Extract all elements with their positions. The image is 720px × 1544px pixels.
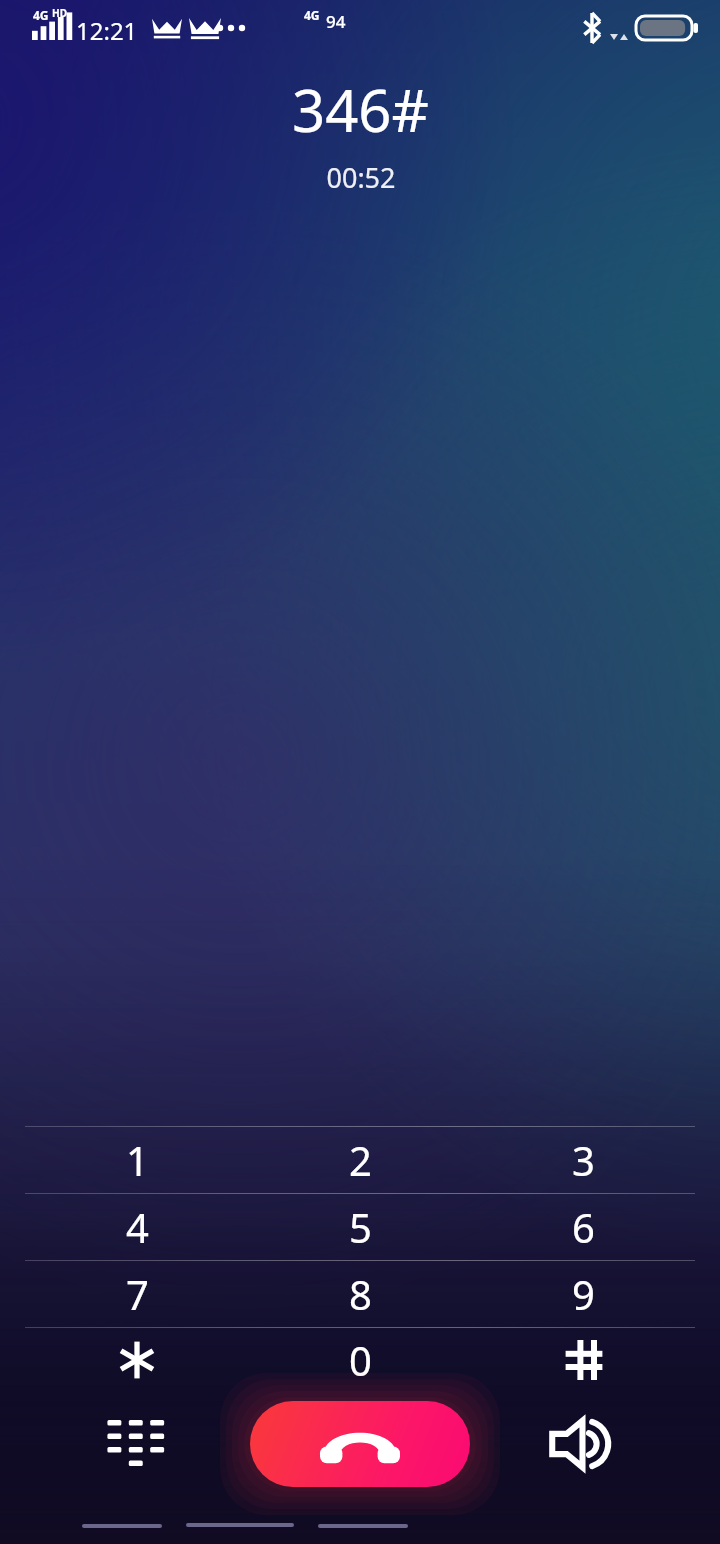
button[interactable]: 7 — [25, 1261, 249, 1327]
button[interactable]: 8 — [249, 1261, 472, 1327]
staticText: 7 — [126, 1267, 149, 1321]
staticText: 3 — [572, 1133, 595, 1187]
staticText: 8 — [349, 1267, 372, 1321]
button[interactable] — [25, 1328, 249, 1392]
button[interactable]: 3 — [472, 1127, 695, 1193]
button[interactable] — [472, 1328, 695, 1392]
staticText: 4G — [33, 7, 49, 23]
button[interactable]: 4 — [25, 1194, 249, 1260]
staticText: HD — [52, 6, 67, 20]
staticText: 6 — [572, 1200, 595, 1254]
button[interactable]: 5 — [249, 1194, 472, 1260]
button[interactable]: End call — [250, 1401, 470, 1487]
staticText: 2 — [349, 1133, 372, 1187]
button[interactable]: 6 — [472, 1194, 695, 1260]
staticText: 00:52 — [326, 159, 396, 196]
button[interactable]: 9 — [472, 1261, 695, 1327]
button[interactable]: 0 — [249, 1328, 472, 1392]
staticText: 4G — [304, 7, 320, 23]
staticText: 1 — [126, 1133, 149, 1187]
staticText: 5 — [349, 1200, 372, 1254]
staticText: 0 — [349, 1333, 372, 1387]
staticText: 12:21 — [76, 14, 138, 47]
button[interactable]: 2 — [249, 1127, 472, 1193]
staticText: 4 — [126, 1200, 149, 1254]
staticText: 346# — [292, 70, 429, 149]
button[interactable]: 1 — [25, 1127, 249, 1193]
button[interactable]: Speaker — [537, 1396, 633, 1492]
staticText: 94 — [326, 10, 346, 33]
button[interactable]: Hide dialpad — [87, 1396, 183, 1492]
staticText: 9 — [572, 1267, 595, 1321]
